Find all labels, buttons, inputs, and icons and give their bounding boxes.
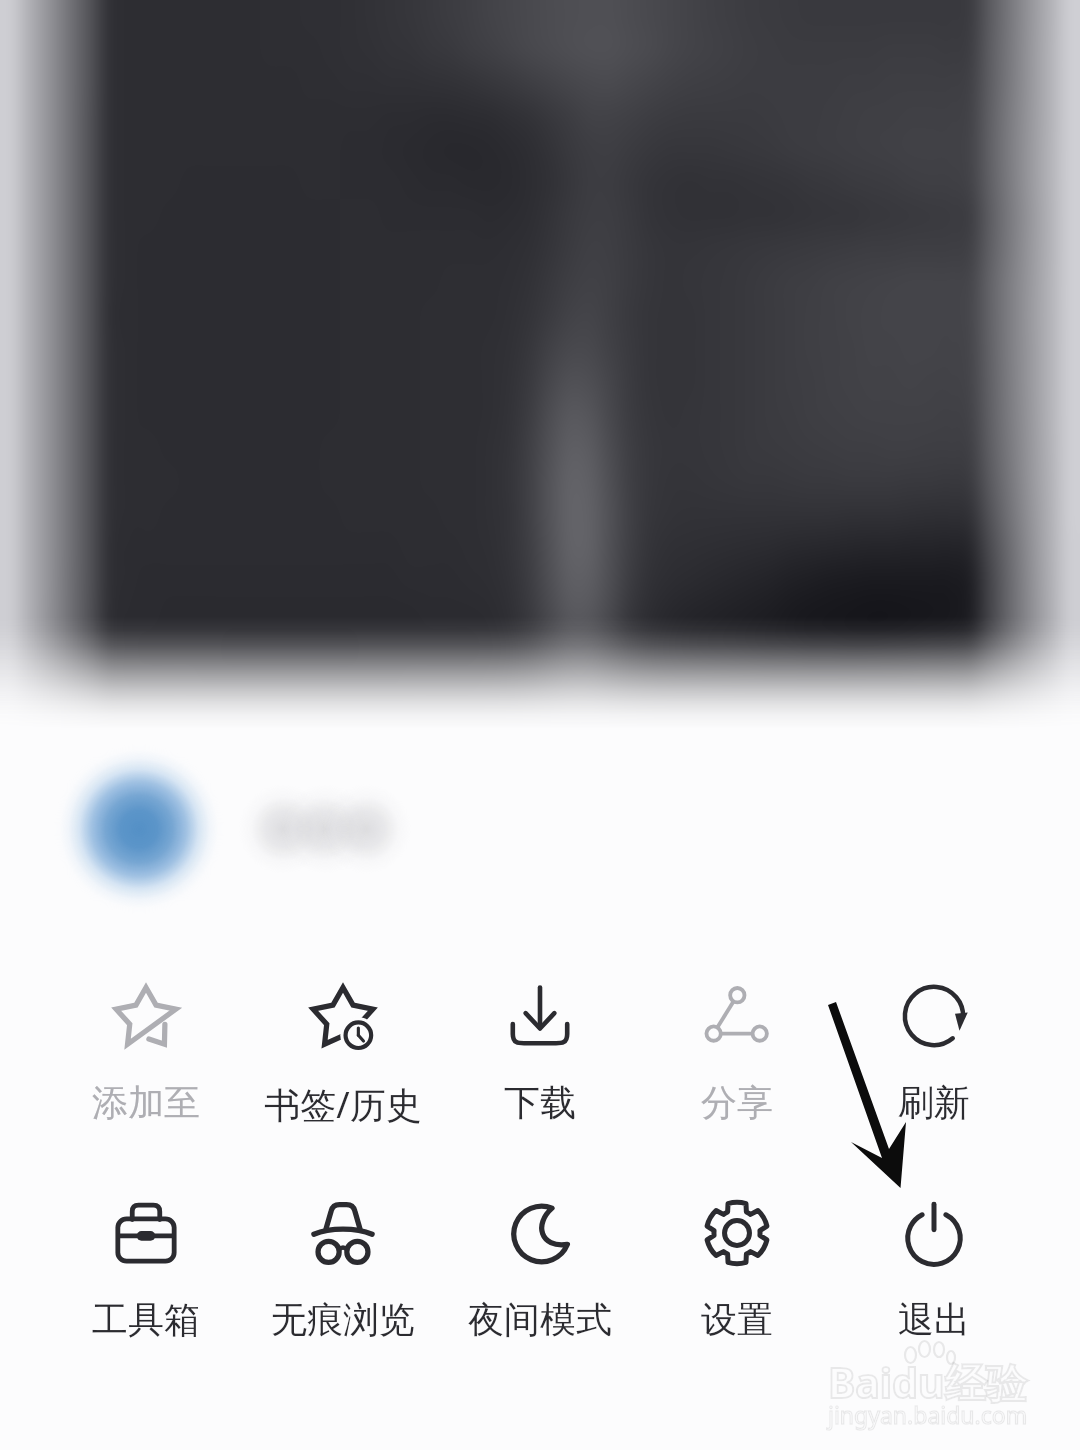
button[interactable]: Night mode xyxy=(442,1201,638,1342)
button[interactable]: Add to xyxy=(48,984,244,1125)
button[interactable]: Bookmarks and history xyxy=(245,984,441,1129)
button[interactable]: Refresh xyxy=(836,984,1032,1125)
staticText: 无痕浏览 xyxy=(271,1297,415,1342)
staticText: 书签/历史 xyxy=(264,1080,422,1129)
button[interactable]: Downloads xyxy=(442,984,638,1125)
staticText: 下载 xyxy=(504,1080,576,1125)
button[interactable]: Incognito browsing xyxy=(245,1201,441,1342)
button[interactable]: Toolbox xyxy=(48,1201,244,1342)
staticText: 退出 xyxy=(898,1297,970,1342)
staticText: 添加至 xyxy=(92,1080,200,1125)
button[interactable]: Share xyxy=(639,984,835,1125)
staticText: Baidu经验 xyxy=(828,1354,1027,1410)
staticText: 设置 xyxy=(701,1297,773,1342)
staticText: 分享 xyxy=(701,1080,773,1125)
button[interactable] xyxy=(0,736,1080,922)
staticText: 夜间模式 xyxy=(468,1297,612,1342)
staticText: jingyan.baidu.com xyxy=(828,1399,1028,1430)
staticText: 工具箱 xyxy=(92,1297,200,1342)
button[interactable]: Settings xyxy=(639,1201,835,1342)
button[interactable]: Exit xyxy=(836,1201,1032,1342)
staticText: 刷新 xyxy=(898,1080,970,1125)
